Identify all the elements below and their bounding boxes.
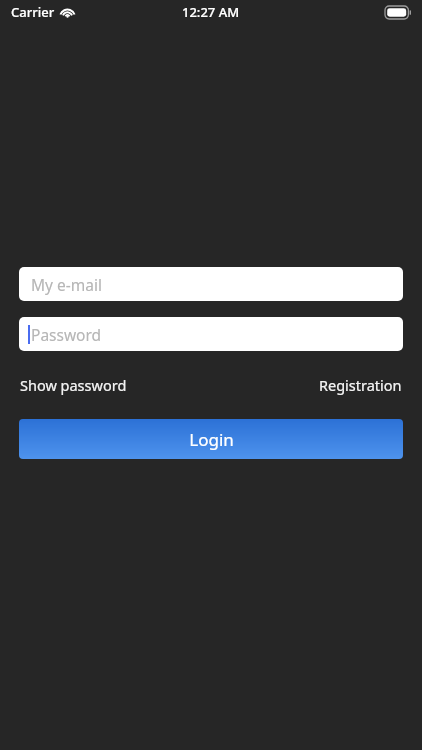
staticText: Password [31, 324, 102, 345]
staticText: Registration [319, 375, 402, 395]
button[interactable]: My e-mail [19, 267, 403, 301]
staticText: My e-mail [31, 274, 102, 295]
staticText: Login [189, 428, 234, 451]
button[interactable]: Registration [318, 373, 403, 397]
button[interactable]: Show password [19, 373, 128, 397]
button[interactable]: Password [19, 317, 403, 351]
staticText: 12:27 AM [182, 3, 240, 21]
staticText: Show password [20, 375, 127, 395]
staticText: Carrier [11, 3, 55, 21]
button[interactable]: Login [19, 419, 403, 459]
